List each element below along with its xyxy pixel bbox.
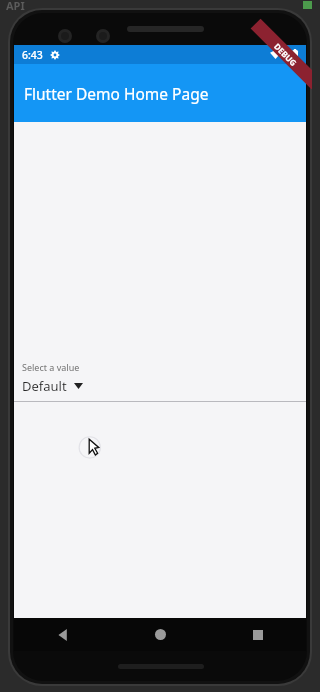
staticText: API [6,0,25,13]
button[interactable]: Default [14,376,306,401]
staticText: Default [22,377,67,395]
staticText: Select a value [22,361,80,373]
button[interactable]: Home [112,618,209,651]
staticText: Flutter Demo Home Page [24,83,209,104]
button[interactable]: Recent apps [209,618,306,651]
staticText: 6:43 [22,48,43,62]
button[interactable]: Back [14,618,112,651]
staticText: DEBUG [272,41,299,68]
other: Open dropdown [74,383,83,389]
